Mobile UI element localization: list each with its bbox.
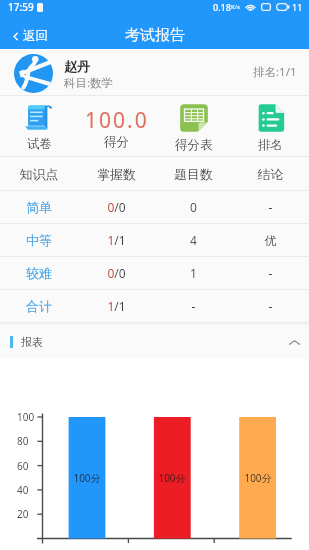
staticText: 100分 <box>154 471 190 485</box>
staticText: 中等 <box>0 232 78 248</box>
staticText: 100分 <box>240 471 276 485</box>
button[interactable]: 报表 <box>0 325 309 359</box>
staticText: - <box>232 298 309 314</box>
staticText: 100分 <box>69 471 105 485</box>
staticText: 得分表 <box>175 137 213 153</box>
button[interactable]: 赵丹 <box>14 49 297 95</box>
staticText: 得分 <box>104 134 129 150</box>
staticText: 11 <box>292 1 303 13</box>
button[interactable]: 返回 <box>12 28 48 44</box>
button[interactable]: Collapse <box>285 333 303 351</box>
staticText: 100 <box>17 410 43 424</box>
staticText: 合计 <box>0 298 78 314</box>
staticText: 1 <box>155 265 232 281</box>
staticText: 0.18 <box>213 1 231 13</box>
staticText: 考试报告 <box>125 26 185 45</box>
staticText: 优 <box>232 233 309 248</box>
staticText: 题目数 <box>155 166 232 182</box>
staticText: 排名 <box>258 137 283 153</box>
staticText: 1/1 <box>78 298 155 314</box>
staticText: 4 <box>155 232 232 248</box>
button[interactable]: 试卷 <box>0 103 78 150</box>
staticText: 17:59 <box>8 0 34 14</box>
staticText: - <box>232 265 309 281</box>
staticText: 返回 <box>23 28 48 44</box>
staticText: 1/1 <box>78 232 155 248</box>
staticText: K/s <box>231 3 240 11</box>
staticText: 结论 <box>232 166 309 182</box>
staticText: 排名:1/1 <box>253 64 297 80</box>
staticText: 赵丹 <box>64 58 90 74</box>
staticText: 20 <box>17 507 43 521</box>
staticText: 40 <box>17 483 43 497</box>
staticText: 报表 <box>21 335 43 349</box>
button[interactable]: 中等 <box>0 224 309 256</box>
button[interactable]: 排名 <box>232 102 309 151</box>
staticText: 知识点 <box>0 166 78 182</box>
staticText: 简单 <box>0 199 78 215</box>
button[interactable]: 合计 <box>0 290 309 322</box>
button[interactable]: 得分表 <box>155 102 232 151</box>
button[interactable]: 简单 <box>0 191 309 223</box>
staticText: 0/0 <box>78 199 155 215</box>
staticText: - <box>232 199 309 215</box>
staticText: 100.0 <box>85 106 149 135</box>
button[interactable]: 100.0 <box>78 103 155 149</box>
staticText: 0 <box>155 199 232 215</box>
staticText: 80 <box>17 434 43 448</box>
staticText: - <box>155 298 232 314</box>
staticText: 试卷 <box>27 136 52 152</box>
staticText: 60 <box>17 459 43 473</box>
staticText: 0/0 <box>78 265 155 281</box>
button[interactable]: 较难 <box>0 257 309 289</box>
staticText: 较难 <box>0 265 78 281</box>
staticText: 掌握数 <box>78 166 155 182</box>
staticText: 科目:数学 <box>64 75 114 91</box>
